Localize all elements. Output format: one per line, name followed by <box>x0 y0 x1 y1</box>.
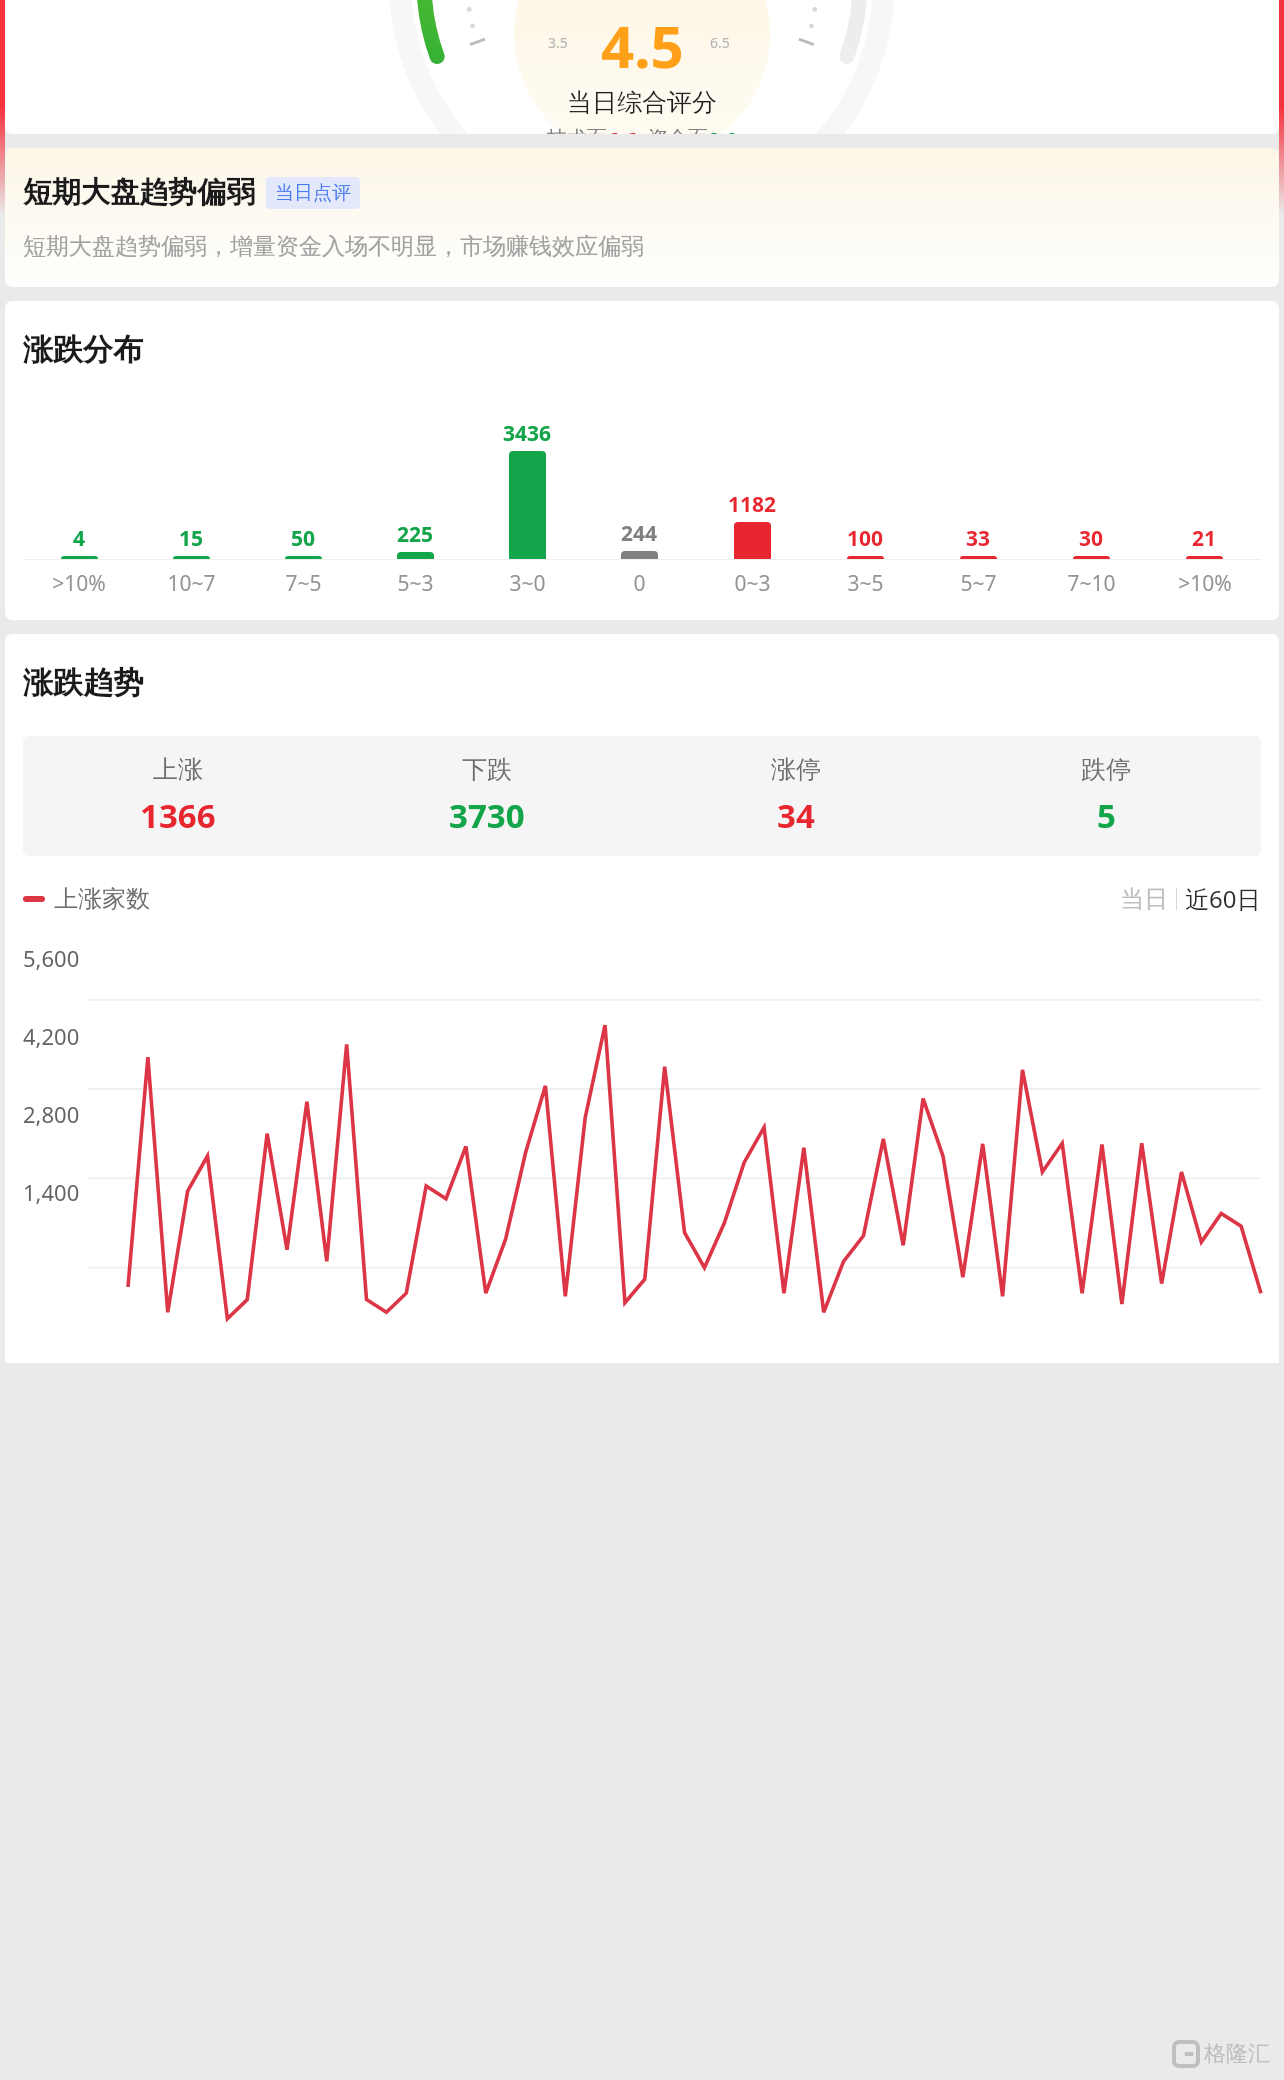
staticText: 50 <box>291 524 316 553</box>
staticText: 当日 <box>1120 884 1168 914</box>
staticText: 5,600 <box>23 943 80 973</box>
staticText: >10% <box>1178 569 1232 598</box>
staticText: 短期大盘趋势偏弱，增量资金入场不明显，市场赚钱效应偏弱 <box>23 232 644 261</box>
staticText: 1182 <box>728 490 777 519</box>
staticText: 21 <box>1192 524 1217 553</box>
staticText: 30 <box>1079 524 1104 553</box>
staticText: 34 <box>777 793 815 838</box>
staticText: 6.6 <box>607 126 637 134</box>
staticText: 跌停 <box>1081 754 1131 785</box>
staticText: 3.5 <box>548 33 568 52</box>
staticText: 15 <box>179 524 204 553</box>
staticText: 2.0 <box>708 126 738 134</box>
staticText: 格隆汇 <box>1204 2040 1270 2068</box>
staticText: 10~7 <box>167 569 216 598</box>
staticText: 7~5 <box>285 569 322 598</box>
staticText: 下跌 <box>462 754 512 785</box>
staticText: 225 <box>397 520 434 549</box>
staticText: 2,800 <box>23 1099 80 1129</box>
staticText: 近60日 <box>1185 882 1261 915</box>
staticText: 0 <box>633 569 646 598</box>
staticText: 244 <box>621 519 658 548</box>
staticText: 涨停 <box>771 754 821 785</box>
staticText: 3436 <box>503 419 552 448</box>
staticText: 5 <box>1097 793 1116 838</box>
staticText: 4 <box>73 524 86 553</box>
staticText: 5~3 <box>397 569 434 598</box>
staticText: 1366 <box>140 793 216 838</box>
staticText: 100 <box>847 524 884 553</box>
staticText: >10% <box>52 569 106 598</box>
staticText: 上涨家数 <box>54 884 150 914</box>
staticText: 33 <box>966 524 991 553</box>
button[interactable]: 当日 <box>1120 882 1261 915</box>
staticText: 涨跌分布 <box>23 331 143 369</box>
staticText: 3~0 <box>509 569 546 598</box>
staticText: 当日点评 <box>275 181 351 205</box>
staticText: 6.5 <box>710 33 730 52</box>
staticText: 涨跌趋势 <box>23 664 143 702</box>
staticText: 技术面 <box>547 126 607 134</box>
staticText: 上涨 <box>153 754 203 785</box>
staticText: 0~3 <box>734 569 771 598</box>
staticText: 短期大盘趋势偏弱 <box>23 174 255 211</box>
staticText: 5~7 <box>960 569 997 598</box>
staticText: 4,200 <box>23 1021 80 1051</box>
staticText: 1,400 <box>23 1177 80 1207</box>
button[interactable]: 短期大盘趋势偏弱 <box>5 148 1279 287</box>
staticText: 当日综合评分 <box>567 87 717 118</box>
staticText: 3730 <box>449 793 525 838</box>
staticText: 4.5 <box>601 6 684 85</box>
staticText: 资金面 <box>648 126 708 134</box>
staticText: 7~10 <box>1067 569 1116 598</box>
staticText: 3~5 <box>847 569 884 598</box>
